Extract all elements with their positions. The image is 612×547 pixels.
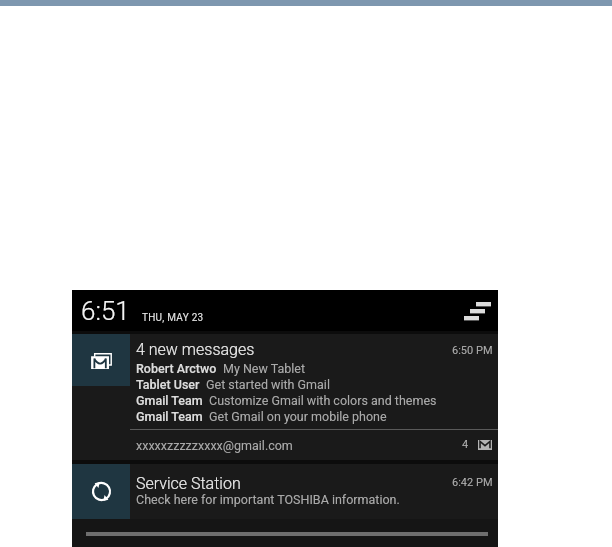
staticText: My New Tablet	[223, 361, 306, 376]
staticText: Get started with Gmail	[206, 377, 330, 392]
staticText: Tablet User	[136, 377, 200, 392]
staticText: Gmail Team	[136, 393, 203, 408]
button[interactable]: Collapse notification shade	[86, 524, 488, 543]
staticText: 6:51	[81, 296, 130, 326]
button[interactable]: 4 new messages	[72, 334, 498, 430]
staticText: Get Gmail on your mobile phone	[209, 409, 387, 424]
button[interactable]: Service Station	[72, 464, 498, 519]
staticText: xxxxxzzzzzxxxx@gmail.com	[136, 438, 293, 453]
staticText: 4	[462, 438, 469, 451]
staticText: 6:50 PM	[452, 344, 493, 357]
staticText: 4 new messages	[136, 340, 255, 359]
staticText: Check here for important TOSHIBA informa…	[136, 492, 400, 507]
button[interactable]: xxxxxzzzzzxxxx@gmail.com	[72, 430, 498, 460]
staticText: Robert Arctwo	[136, 361, 217, 376]
staticText: Service Station	[136, 474, 241, 493]
staticText: 6:42 PM	[452, 476, 493, 489]
button[interactable]: Quick settings	[458, 293, 496, 329]
staticText: Gmail Team	[136, 409, 203, 424]
staticText: THU, MAY 23	[142, 312, 204, 324]
staticText: Customize Gmail with colors and themes	[209, 393, 437, 408]
